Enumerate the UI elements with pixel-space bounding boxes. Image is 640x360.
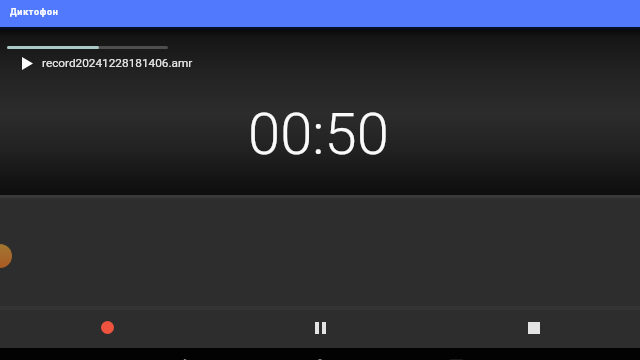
staticText: record20241228181406.amr (42, 56, 193, 70)
button[interactable]: Pause (214, 307, 427, 348)
staticText: Диктофон (10, 7, 59, 17)
button[interactable]: Stop (427, 307, 640, 348)
button[interactable]: Recording item (0, 240, 640, 274)
other: Play (22, 57, 33, 70)
button[interactable]: Home (214, 348, 427, 360)
button[interactable]: Play (0, 54, 640, 72)
button[interactable]: Back (0, 348, 214, 360)
staticText: 00:50 (248, 100, 389, 168)
button[interactable]: Диктофон (0, 0, 640, 27)
button[interactable]: Record (0, 307, 214, 348)
